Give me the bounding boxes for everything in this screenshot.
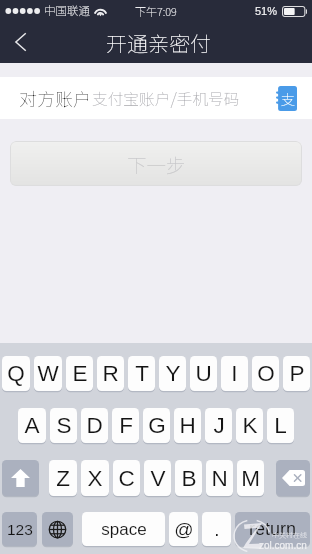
button[interactable]: F (112, 408, 139, 443)
button[interactable]: Y (159, 356, 186, 391)
staticText: A (24, 413, 40, 438)
button[interactable]: L (267, 408, 294, 443)
button[interactable]: Shift (2, 460, 39, 496)
staticText: V (150, 466, 166, 491)
button[interactable]: 下一步 (10, 141, 302, 186)
staticText: X (87, 466, 103, 491)
staticText: W (37, 361, 59, 386)
button[interactable]: Return (235, 512, 310, 546)
staticText: R (102, 361, 119, 386)
button[interactable]: . (202, 512, 231, 546)
button[interactable]: R (97, 356, 124, 391)
staticText: K (242, 413, 258, 438)
button[interactable]: Z (49, 460, 77, 496)
staticText: B (181, 466, 197, 491)
staticText: 下一步 (127, 150, 186, 178)
button[interactable]: W (34, 356, 62, 391)
staticText: 中国联通 (44, 2, 90, 19)
button[interactable]: A (18, 408, 46, 443)
staticText: 开通亲密付 (106, 28, 211, 58)
staticText: U (195, 361, 212, 386)
button[interactable]: N (206, 460, 233, 496)
staticText: return (249, 519, 297, 539)
button[interactable]: Choose contact (276, 86, 297, 111)
button[interactable]: X (81, 460, 109, 496)
staticText: zol.com.cn (259, 540, 307, 551)
staticText: S (56, 413, 72, 438)
button[interactable]: G (143, 408, 170, 443)
button[interactable]: Switch keyboard (42, 512, 73, 546)
staticText: 下午7:09 (135, 3, 177, 19)
button[interactable]: O (252, 356, 279, 391)
staticText: @ (174, 519, 194, 540)
staticText: space (101, 520, 147, 539)
staticText: O (257, 361, 275, 386)
button[interactable]: I (221, 356, 248, 391)
button[interactable]: S (50, 408, 77, 443)
button[interactable]: Back (0, 21, 40, 63)
button[interactable]: Backspace (276, 460, 310, 496)
staticText: G (148, 413, 166, 438)
button[interactable]: V (144, 460, 171, 496)
staticText: M (241, 466, 260, 491)
staticText: J (213, 413, 225, 438)
button[interactable]: H (174, 408, 201, 443)
button[interactable]: J (205, 408, 232, 443)
button[interactable]: @ (169, 512, 198, 546)
button[interactable]: T (128, 356, 155, 391)
staticText: Q (7, 361, 25, 386)
staticText: I (231, 361, 238, 386)
staticText: Y (165, 361, 181, 386)
button[interactable]: D (81, 408, 108, 443)
staticText: L (274, 413, 287, 438)
button[interactable]: K (236, 408, 263, 443)
button[interactable]: M (237, 460, 264, 496)
button[interactable]: U (190, 356, 217, 391)
staticText: F (119, 413, 133, 438)
staticText: Z (56, 466, 70, 491)
button[interactable]: E (66, 356, 93, 391)
button[interactable]: Numbers (2, 512, 37, 546)
staticText: D (86, 413, 103, 438)
staticText: 对方账户 (19, 85, 91, 111)
button[interactable]: Q (2, 356, 30, 391)
staticText: 123 (7, 521, 33, 538)
staticText: 51% (255, 5, 278, 17)
staticText: 中关村在线 (272, 530, 307, 540)
staticText: N (211, 466, 228, 491)
staticText: P (289, 361, 305, 386)
staticText: H (179, 413, 196, 438)
staticText: 支 (281, 89, 295, 109)
button[interactable]: space (82, 512, 165, 546)
button[interactable]: B (175, 460, 202, 496)
staticText: 支付宝账户/手机号码 (92, 87, 240, 110)
button[interactable]: P (283, 356, 310, 391)
staticText: T (135, 361, 149, 386)
staticText: E (72, 361, 88, 386)
staticText: . (214, 519, 220, 540)
button[interactable]: C (113, 460, 140, 496)
staticText: C (118, 466, 135, 491)
